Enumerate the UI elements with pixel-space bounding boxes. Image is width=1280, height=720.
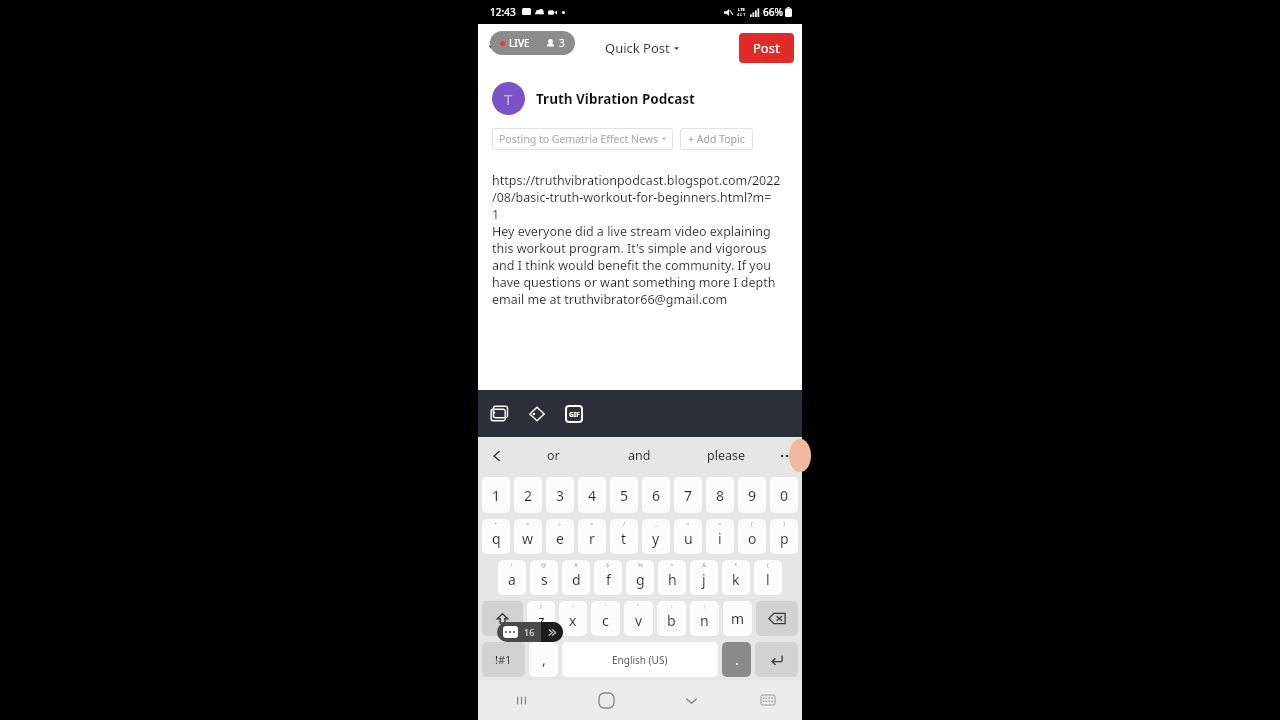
button[interactable]: Home: [564, 680, 649, 720]
button[interactable]: &: [690, 560, 718, 595]
button[interactable]: Hide keyboard: [649, 680, 734, 720]
staticText: 3: [556, 486, 565, 505]
button[interactable]: 16: [497, 622, 563, 642]
button[interactable]: *: [722, 560, 750, 595]
button[interactable]: ): [527, 601, 555, 636]
button[interactable]: Quick Post: [605, 39, 679, 57]
button[interactable]: More options: [780, 449, 794, 463]
staticText: l: [766, 570, 770, 589]
button[interactable]: _: [642, 519, 670, 554]
button[interactable]: 7: [674, 477, 702, 513]
staticText: _: [655, 520, 658, 528]
staticText: GIF: [569, 410, 580, 419]
button[interactable]: 6: [642, 477, 670, 513]
button[interactable]: ÷: [546, 519, 574, 554]
staticText: n: [700, 611, 709, 630]
button[interactable]: Posting to Gematria Effect News: [492, 128, 673, 150]
button[interactable]: ,: [529, 642, 558, 677]
staticText: q: [492, 529, 501, 548]
button[interactable]: [: [738, 519, 766, 554]
button[interactable]: 2: [514, 477, 542, 513]
staticText: ": [637, 602, 640, 610]
staticText: -: [572, 602, 574, 610]
staticText: $: [606, 561, 610, 569]
button[interactable]: (: [754, 560, 782, 595]
button[interactable]: ×: [514, 519, 542, 554]
staticText: /08/basic-truth-workout-for-beginners.ht…: [492, 189, 772, 206]
button[interactable]: Switch keyboard: [734, 680, 802, 720]
staticText: + Add Topic: [688, 132, 745, 146]
staticText: Truth Vibration Podcast: [536, 90, 695, 108]
button[interactable]: GIF: [565, 405, 583, 423]
button[interactable]: ': [591, 601, 620, 636]
button[interactable]: 4: [578, 477, 606, 513]
button[interactable]: m: [723, 601, 752, 636]
staticText: please: [707, 447, 746, 464]
button[interactable]: <: [674, 519, 702, 554]
button[interactable]: 1: [482, 477, 510, 513]
button[interactable]: Previous suggestions: [490, 449, 504, 463]
button[interactable]: Backspace: [756, 601, 798, 636]
button[interactable]: >: [706, 519, 734, 554]
staticText: T: [504, 89, 513, 109]
button[interactable]: %: [626, 560, 654, 595]
staticText: LTE: [738, 7, 745, 12]
button[interactable]: +: [482, 519, 510, 554]
staticText: y: [652, 529, 660, 548]
button[interactable]: Add photo: [490, 404, 509, 423]
staticText: and: [628, 447, 651, 464]
staticText: =: [590, 520, 594, 528]
button[interactable]: T: [492, 82, 525, 115]
staticText: 1: [492, 206, 500, 223]
button[interactable]: :: [657, 601, 686, 636]
button[interactable]: $: [594, 560, 622, 595]
button[interactable]: 8: [706, 477, 734, 513]
button[interactable]: !#1: [482, 642, 525, 677]
button[interactable]: ]: [770, 519, 798, 554]
staticText: <: [686, 520, 690, 528]
button[interactable]: 9: [738, 477, 766, 513]
button[interactable]: -: [559, 601, 587, 636]
button[interactable]: Post: [739, 33, 794, 63]
staticText: LIVE: [509, 36, 530, 50]
button[interactable]: Tag: [528, 405, 546, 423]
button[interactable]: English (US): [562, 642, 718, 677]
button[interactable]: !: [498, 560, 526, 595]
button[interactable]: please: [683, 437, 770, 474]
button[interactable]: #: [562, 560, 590, 595]
staticText: r: [589, 529, 595, 548]
button[interactable]: ": [624, 601, 653, 636]
button[interactable]: Recents: [478, 680, 564, 720]
staticText: w: [522, 529, 534, 548]
staticText: 5: [620, 486, 629, 505]
staticText: Quick Post: [605, 39, 670, 57]
staticText: a: [508, 570, 516, 589]
staticText: Hey everyone did a live stream video exp…: [492, 223, 771, 240]
button[interactable]: 3: [546, 477, 574, 513]
button[interactable]: or: [510, 437, 596, 474]
staticText: d: [572, 570, 581, 589]
button[interactable]: Enter: [755, 642, 798, 677]
button[interactable]: ;: [690, 601, 719, 636]
staticText: *: [734, 561, 738, 569]
button[interactable]: Shift: [482, 601, 523, 636]
button[interactable]: 5: [610, 477, 638, 513]
button[interactable]: ^: [658, 560, 686, 595]
staticText: x: [569, 611, 577, 630]
staticText: s: [541, 570, 548, 589]
button[interactable]: and: [596, 437, 683, 474]
staticText: ,: [542, 650, 546, 669]
button[interactable]: @: [530, 560, 558, 595]
button[interactable]: =: [578, 519, 606, 554]
button[interactable]: 0: [770, 477, 798, 513]
button[interactable]: Collapse: [486, 39, 504, 57]
staticText: &: [702, 561, 707, 569]
staticText: ÷: [558, 520, 562, 528]
staticText: v: [635, 611, 643, 630]
button[interactable]: LIVE: [490, 31, 575, 55]
button[interactable]: + Add Topic: [680, 128, 753, 150]
staticText: 8: [716, 486, 725, 505]
button[interactable]: /: [610, 519, 638, 554]
staticText: b: [667, 611, 676, 630]
button[interactable]: .: [722, 642, 751, 677]
